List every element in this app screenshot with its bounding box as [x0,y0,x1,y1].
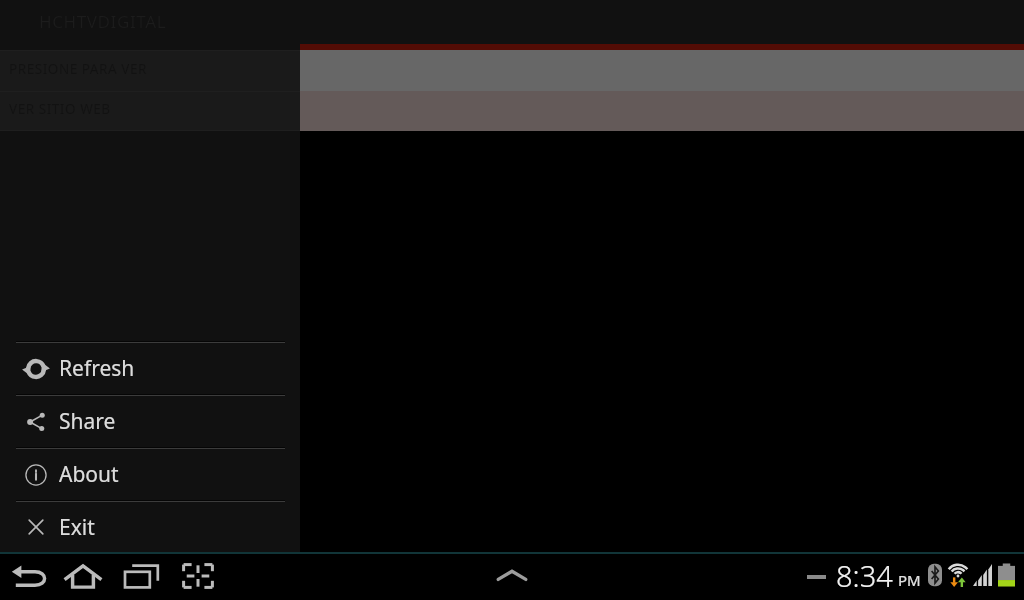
button[interactable]: Fit screen [175,552,221,600]
staticText: Share [59,407,116,436]
button[interactable]: Home [60,552,106,600]
button[interactable]: Share [0,396,300,447]
button[interactable]: About [0,449,300,500]
button[interactable]: Show navigation [497,570,531,590]
staticText: Exit [59,513,95,542]
staticText: 8:34 [836,556,893,595]
button[interactable]: Exit [0,502,300,552]
staticText: Refresh [59,354,135,383]
button[interactable]: Recents [118,552,164,600]
button[interactable]: Refresh [0,343,300,394]
staticText: About [59,460,119,489]
staticText: PM [898,570,921,590]
button[interactable]: Back [8,552,54,600]
